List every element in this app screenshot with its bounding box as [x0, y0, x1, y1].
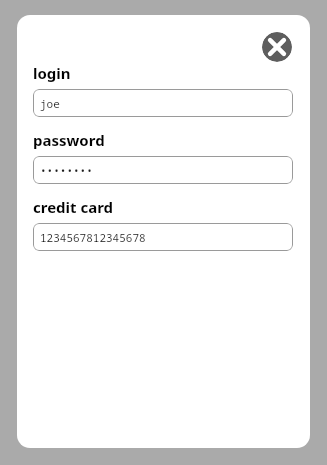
staticText: 1234567812345678	[40, 230, 146, 245]
staticText: ••••••••	[40, 163, 93, 178]
staticText: password	[33, 130, 105, 150]
button[interactable]: Close	[262, 32, 292, 62]
staticText: credit card	[33, 197, 114, 217]
button[interactable]: 1234567812345678	[33, 223, 293, 251]
button[interactable]: ••••••••	[33, 156, 293, 184]
staticText: login	[33, 63, 71, 83]
button[interactable]: joe	[33, 89, 293, 117]
staticText: joe	[40, 96, 60, 111]
